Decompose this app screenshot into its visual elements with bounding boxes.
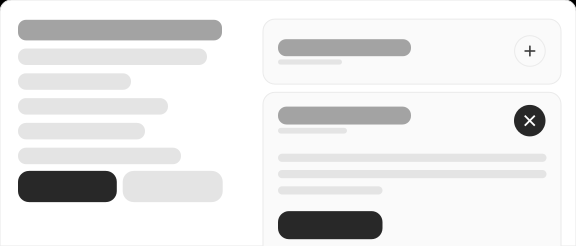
button[interactable]: Confirm: [278, 211, 382, 239]
button[interactable]: Primary action: [18, 171, 117, 202]
button[interactable]: Secondary action: [123, 171, 223, 202]
button[interactable]: Close: [514, 105, 545, 136]
button[interactable]: Add: [515, 36, 545, 66]
